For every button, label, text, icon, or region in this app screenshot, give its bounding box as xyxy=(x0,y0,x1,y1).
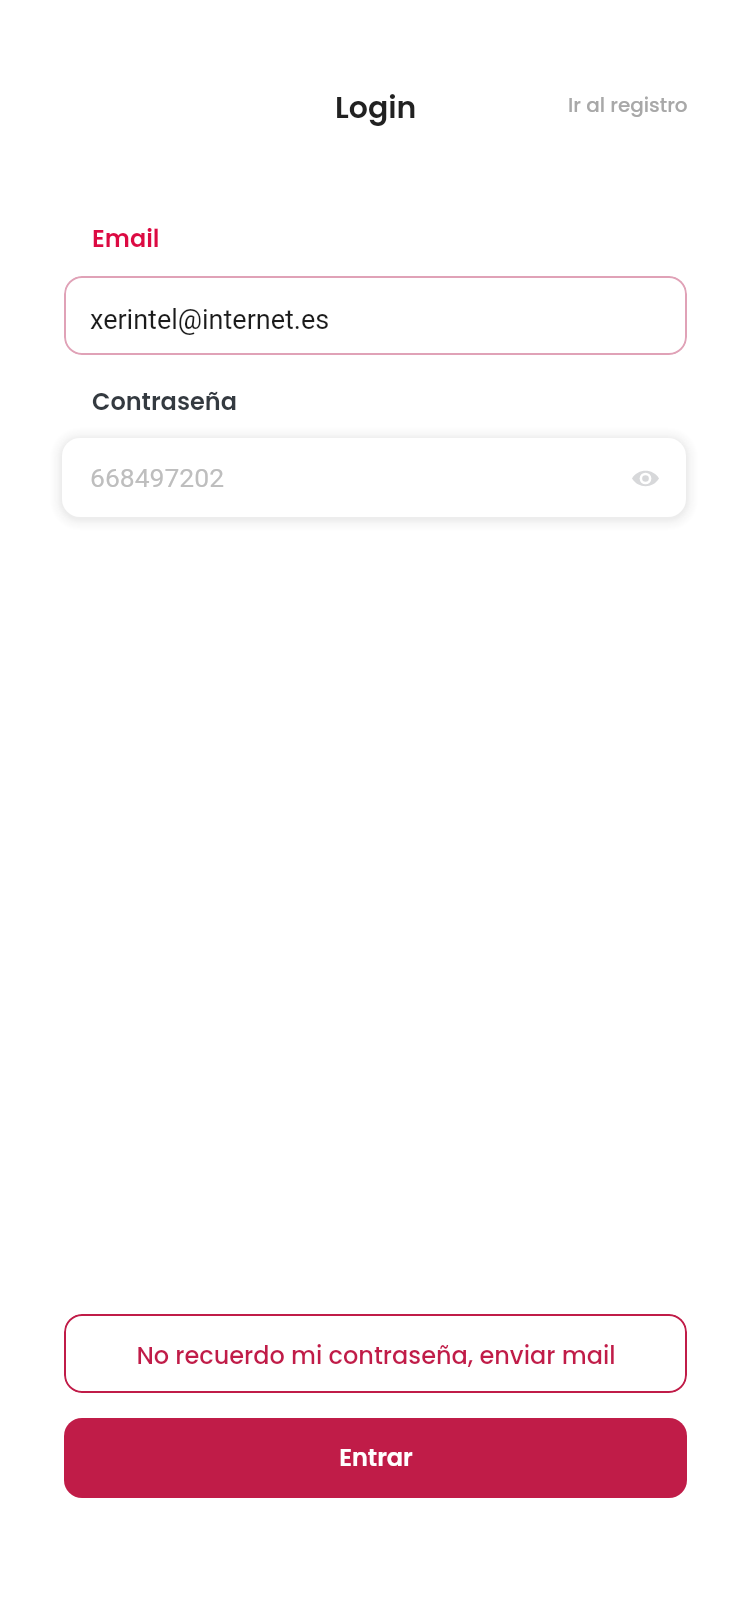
staticText: Login xyxy=(335,87,417,129)
button[interactable]: Mostrar contraseña xyxy=(623,456,667,500)
button[interactable]: No recuerdo mi contraseña, enviar mail xyxy=(64,1314,687,1393)
staticText: No recuerdo mi contraseña, enviar mail xyxy=(136,1339,616,1373)
button[interactable]: 668497202 xyxy=(62,438,686,517)
staticText: Contraseña xyxy=(92,385,237,419)
staticText: Email xyxy=(92,222,160,256)
staticText: Ir al registro xyxy=(568,91,688,119)
staticText: xerintel@internet.es xyxy=(90,304,330,336)
button[interactable]: xerintel@internet.es xyxy=(64,276,687,355)
button[interactable]: Ir al registro xyxy=(552,79,704,131)
staticText: Entrar xyxy=(339,1441,413,1475)
button[interactable]: Entrar xyxy=(64,1418,687,1498)
staticText: 668497202 xyxy=(90,462,225,493)
